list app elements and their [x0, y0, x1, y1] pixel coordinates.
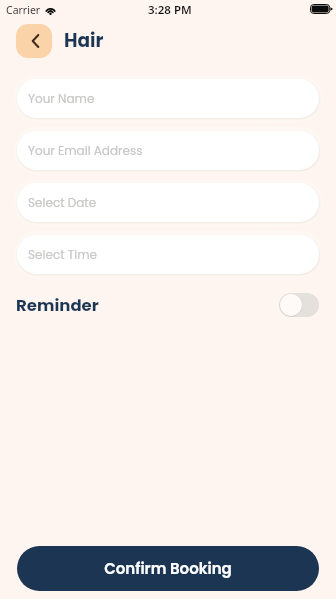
staticText: Your Name [28, 90, 95, 107]
staticText: Your Email Address [28, 142, 143, 159]
staticText: Carrier [6, 3, 41, 17]
button[interactable]: Confirm Booking [17, 546, 319, 591]
staticText: 3:28 PM [148, 2, 192, 18]
button[interactable]: Select Time [17, 235, 319, 274]
staticText: Select Time [28, 246, 97, 263]
staticText: Reminder [16, 294, 99, 317]
staticText: Select Date [28, 194, 97, 211]
staticText: Confirm Booking [104, 558, 232, 579]
button[interactable]: Your Email Address [17, 131, 319, 170]
button[interactable]: Your Name [17, 79, 319, 118]
staticText: Hair [64, 28, 104, 54]
button[interactable]: Reminder toggle [279, 293, 319, 317]
button[interactable]: Select Date [17, 183, 319, 222]
button[interactable]: Back [16, 24, 52, 58]
